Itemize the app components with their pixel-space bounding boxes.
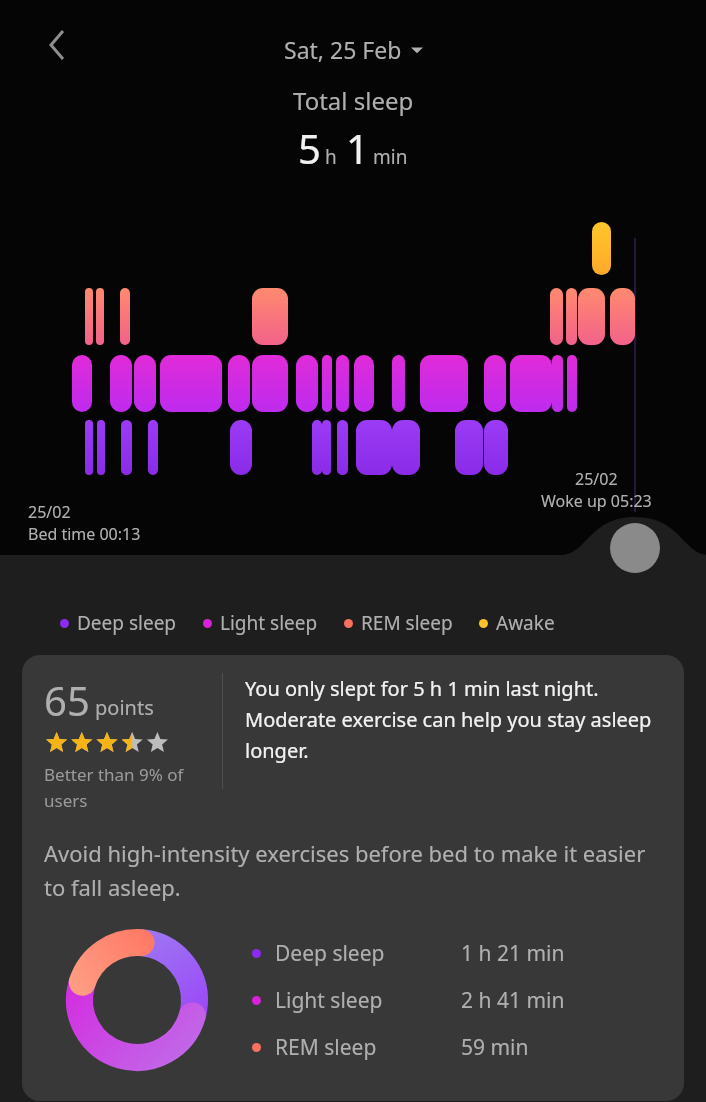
staticText: 65 [44, 673, 90, 727]
button[interactable]: Deep sleep [60, 610, 177, 636]
button[interactable]: Deep sleep [252, 939, 642, 968]
staticText: 5 [298, 121, 321, 175]
staticText: Total sleep [293, 84, 414, 117]
staticText: Deep sleep [275, 939, 461, 968]
staticText: 2 h 41 min [461, 986, 565, 1015]
button[interactable]: Light sleep [252, 986, 642, 1015]
staticText: 1 h 21 min [461, 939, 565, 968]
button[interactable]: Awake [479, 610, 555, 636]
staticText: 25/02 [575, 468, 618, 490]
button[interactable]: Light sleep [203, 610, 318, 636]
staticText: 25/02 [28, 501, 71, 523]
staticText: Deep sleep [77, 610, 177, 636]
staticText: min [373, 144, 408, 170]
staticText: Bed time 00:13 [28, 523, 141, 545]
staticText: Light sleep [275, 986, 461, 1015]
staticText: h [325, 144, 337, 170]
staticText: REM sleep [361, 610, 453, 636]
button[interactable]: Sat, 25 Feb [276, 30, 431, 69]
staticText: Better than 9% of users [44, 763, 222, 812]
staticText: 1 [346, 121, 369, 175]
button[interactable]: REM sleep [344, 610, 453, 636]
staticText: points [95, 694, 154, 721]
button[interactable]: Back [26, 14, 88, 76]
staticText: Woke up 05:23 [541, 490, 652, 512]
staticText: Sat, 25 Feb [284, 34, 402, 65]
staticText: Awake [496, 610, 555, 636]
staticText: REM sleep [275, 1033, 461, 1062]
staticText: Light sleep [220, 610, 318, 636]
staticText: You only slept for 5 h 1 min last night.… [245, 675, 670, 764]
staticText: 59 min [461, 1033, 529, 1062]
button[interactable]: REM sleep [252, 1033, 642, 1062]
staticText: Avoid high-intensity exercises before be… [44, 838, 664, 903]
